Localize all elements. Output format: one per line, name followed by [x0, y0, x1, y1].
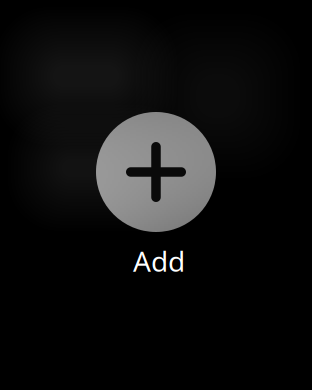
button[interactable]: Add: [0, 0, 312, 390]
staticText: Add: [133, 242, 185, 280]
